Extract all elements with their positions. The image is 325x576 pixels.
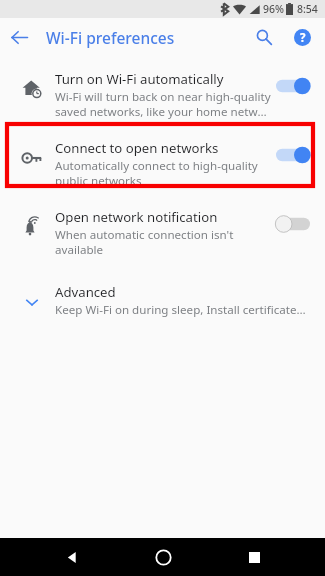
button[interactable]: Toggle on	[271, 138, 315, 172]
button[interactable]: Help	[283, 18, 321, 56]
button[interactable]: Advanced	[0, 273, 325, 331]
staticText: 96%	[263, 2, 284, 16]
staticText: Automatically connect to high-quality pu…	[55, 158, 258, 189]
button[interactable]: Search	[245, 18, 283, 56]
staticText: Wi-Fi will turn back on near high-qualit…	[55, 89, 271, 120]
button[interactable]: Back	[0, 18, 38, 56]
staticText: 8:54	[297, 2, 318, 16]
button[interactable]: Home	[143, 538, 183, 576]
staticText: Open network notification	[55, 208, 218, 226]
button[interactable]: Open network notification	[0, 198, 325, 267]
button[interactable]: Recent apps	[234, 538, 274, 576]
staticText: Keep Wi-Fi on during sleep, Install cert…	[55, 302, 307, 318]
staticText: When automatic connection isn't availabl…	[55, 227, 234, 258]
button[interactable]: Toggle on	[271, 69, 315, 103]
staticText: Turn on Wi-Fi automatically	[55, 70, 224, 88]
staticText: ?	[300, 30, 306, 46]
staticText: Connect to open networks	[55, 139, 219, 157]
staticText: Advanced	[55, 283, 116, 301]
staticText: Wi-Fi preferences	[46, 27, 175, 48]
button[interactable]: Turn on Wi-Fi automatically	[0, 60, 325, 129]
button[interactable]: Connect to open networks	[0, 129, 325, 198]
button[interactable]: Toggle off	[271, 207, 315, 241]
button[interactable]: Back	[51, 538, 91, 576]
